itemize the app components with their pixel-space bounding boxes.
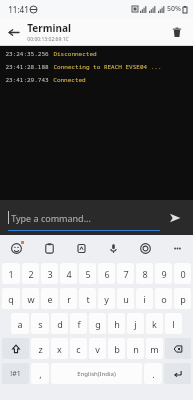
button[interactable]: Delete [167,22,187,42]
staticText: n [133,343,139,355]
staticText: 23:24:35.256 [5,50,49,58]
staticText: d [57,318,63,330]
button[interactable]: o [155,288,172,309]
staticText: s [38,318,43,330]
staticText: e [47,293,53,305]
staticText: f [77,318,81,330]
button[interactable]: English(India) [51,363,142,384]
button[interactable]: . [144,363,162,384]
staticText: y [104,293,109,305]
staticText: g [95,318,101,330]
button[interactable]: 3 [41,263,58,284]
staticText: 7 [123,268,129,280]
button[interactable]: 6 [98,263,115,284]
staticText: l [172,318,175,330]
staticText: i [143,293,146,305]
staticText: a [17,318,23,330]
button[interactable]: r [60,288,77,309]
button[interactable]: g [89,313,106,334]
staticText: o [161,293,167,305]
button[interactable]: , [31,363,49,384]
staticText: j [134,318,137,330]
staticText: 2 [28,268,34,280]
button[interactable]: Type a command... [8,200,163,235]
button[interactable]: Stickers [65,235,97,261]
staticText: 3 [47,268,53,280]
button[interactable]: x [51,338,68,359]
button[interactable]: 8 [136,263,153,284]
button[interactable]: d [51,313,68,334]
staticText: 1 [8,268,14,280]
staticText: m [150,343,159,355]
button[interactable]: Enter [164,363,191,384]
button[interactable]: m [146,338,163,359]
staticText: r [67,293,71,305]
button[interactable]: 1 [2,263,20,284]
button[interactable]: 9 [155,263,172,284]
staticText: 23:41:29.743 [5,76,49,84]
button[interactable]: t [79,288,96,309]
button[interactable]: Settings [129,235,161,261]
staticText: 00:00:13:02:69:1C [27,36,69,43]
button[interactable]: s [31,313,49,334]
staticText: z [38,343,43,355]
button[interactable]: More options [161,235,193,261]
staticText: 8 [142,268,148,280]
button[interactable]: b [108,338,125,359]
staticText: Disconnected [53,50,97,58]
button[interactable]: h [108,313,125,334]
staticText: v [95,343,100,355]
staticText: 11:41 [8,4,29,15]
button[interactable]: f [70,313,87,334]
staticText: 0 [180,268,186,280]
staticText: English(India) [77,370,116,378]
button[interactable]: !#1 [2,363,29,384]
button[interactable]: n [127,338,144,359]
staticText: x [57,343,62,355]
staticText: 9 [161,268,167,280]
button[interactable]: Send [163,206,187,230]
button[interactable]: Back [3,22,23,42]
staticText: p [180,293,186,305]
button[interactable]: Backspace [165,338,191,359]
button[interactable]: v [89,338,106,359]
button[interactable]: Emoji [0,235,33,261]
staticText: 5 [85,268,91,280]
staticText: u [123,293,129,305]
staticText: 23:41:28.188 [5,63,49,71]
button[interactable]: 7 [117,263,134,284]
button[interactable]: y [98,288,115,309]
button[interactable]: 2 [22,263,39,284]
staticText: k [152,318,157,330]
button[interactable]: Voice input [97,235,129,261]
staticText: h [114,318,120,330]
button[interactable]: Clipboard [33,235,65,261]
button[interactable]: 5 [79,263,96,284]
button[interactable]: 0 [174,263,191,284]
button[interactable]: u [117,288,134,309]
button[interactable]: k [146,313,163,334]
button[interactable]: 4 [60,263,77,284]
button[interactable]: i [136,288,153,309]
button[interactable]: w [22,288,39,309]
button[interactable]: z [31,338,49,359]
staticText: Type a command... [11,212,91,224]
staticText: , [39,368,42,380]
staticText: q [8,293,14,305]
button[interactable]: c [70,338,87,359]
staticText: Connecting to REACH EVSE04 ... [53,63,162,71]
staticText: 6 [104,268,110,280]
button[interactable]: Shift [2,338,29,359]
staticText: b [114,343,120,355]
staticText: c [76,343,81,355]
button[interactable]: q [2,288,20,309]
button[interactable]: e [41,288,58,309]
button[interactable]: j [127,313,144,334]
button[interactable]: p [174,288,191,309]
staticText: !#1 [10,369,21,379]
staticText: 4 [66,268,72,280]
staticText: 50% [167,4,181,14]
button[interactable]: a [11,313,29,334]
button[interactable]: l [165,313,182,334]
staticText: t [86,293,90,305]
